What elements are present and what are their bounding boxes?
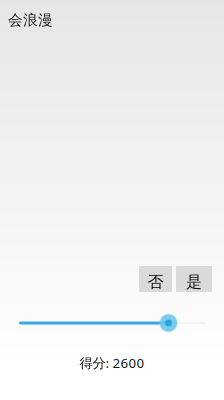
- button[interactable]: 2600: [0, 314, 224, 332]
- button[interactable]: 是: [176, 266, 212, 292]
- staticText: 否: [147, 272, 163, 292]
- staticText: 是: [186, 272, 202, 292]
- staticText: 得分: 2600: [79, 354, 144, 372]
- staticText: 会浪漫: [8, 11, 53, 29]
- button[interactable]: 否: [139, 266, 172, 292]
